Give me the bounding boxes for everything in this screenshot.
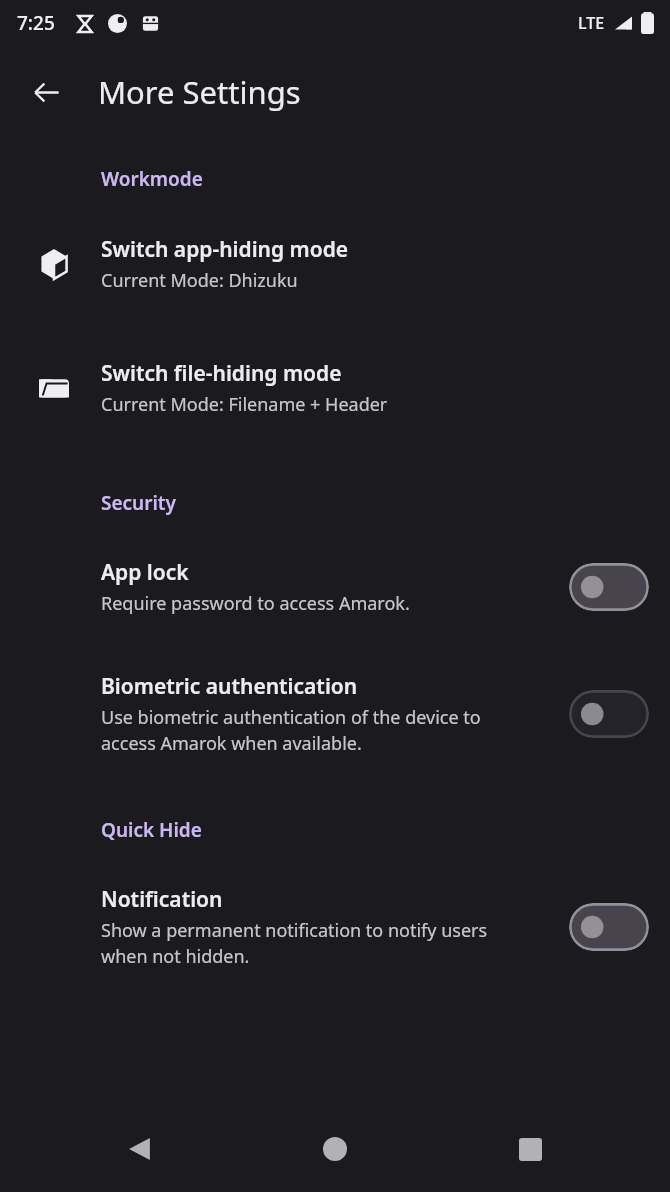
- button[interactable]: Recent apps: [496, 1115, 564, 1183]
- staticText: Current Mode: Dhizuku: [101, 268, 298, 293]
- staticText: Security: [101, 490, 176, 516]
- button[interactable]: Back: [22, 68, 70, 116]
- button[interactable]: Toggle: [569, 690, 649, 738]
- staticText: 7:25: [17, 10, 55, 36]
- staticText: Show a permanent notification to notify …: [101, 918, 488, 968]
- button[interactable]: Switch file-hiding mode: [0, 358, 670, 418]
- staticText: More Settings: [98, 71, 301, 113]
- staticText: Switch file-hiding mode: [101, 359, 342, 388]
- staticText: App lock: [101, 558, 189, 587]
- button[interactable]: Home: [301, 1115, 369, 1183]
- button[interactable]: Toggle: [569, 563, 649, 611]
- staticText: Notification: [101, 885, 223, 914]
- staticText: Switch app-hiding mode: [101, 235, 349, 264]
- button[interactable]: Toggle: [569, 903, 649, 951]
- staticText: LTE: [578, 12, 605, 34]
- button[interactable]: Biometric authentication: [0, 672, 670, 755]
- button[interactable]: Switch app-hiding mode: [0, 234, 670, 294]
- staticText: Biometric authentication: [101, 672, 358, 701]
- staticText: Use biometric authentication of the devi…: [101, 705, 481, 755]
- staticText: Current Mode: Filename + Header: [101, 392, 388, 417]
- staticText: Require password to access Amarok.: [101, 591, 410, 616]
- staticText: Workmode: [101, 166, 203, 192]
- button[interactable]: Notification: [0, 885, 670, 968]
- button[interactable]: Back: [106, 1115, 174, 1183]
- staticText: Quick Hide: [101, 817, 202, 843]
- button[interactable]: App lock: [0, 558, 670, 616]
